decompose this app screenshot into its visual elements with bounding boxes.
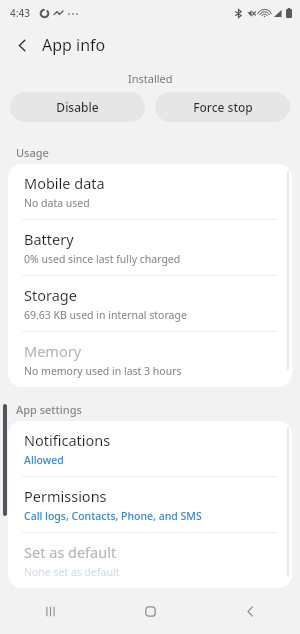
staticText: App settings: [16, 402, 82, 417]
staticText: Battery: [24, 229, 74, 249]
staticText: Call logs, Contacts, Phone, and SMS: [24, 509, 202, 523]
button[interactable]: Recents: [0, 588, 100, 634]
button[interactable]: Mobile data: [8, 164, 292, 219]
staticText: Mobile data: [24, 173, 105, 193]
staticText: No memory used in last 3 hours: [24, 364, 182, 378]
staticText: Notifications: [24, 430, 111, 450]
button[interactable]: Set as default: [8, 533, 292, 588]
button[interactable]: Battery: [8, 220, 292, 275]
button[interactable]: Permissions: [8, 477, 292, 532]
staticText: Installed: [128, 71, 173, 86]
staticText: Permissions: [24, 486, 107, 506]
button[interactable]: Home: [100, 588, 200, 634]
button[interactable]: Force stop: [155, 92, 290, 122]
staticText: Allowed: [24, 453, 64, 467]
staticText: Storage: [24, 285, 77, 305]
staticText: App info: [42, 34, 106, 56]
staticText: 69.63 KB used in internal storage: [24, 308, 187, 322]
staticText: No data used: [24, 196, 90, 210]
staticText: Set as default: [24, 542, 117, 562]
staticText: Memory: [24, 341, 82, 361]
button[interactable]: Notifications: [8, 421, 292, 476]
button[interactable]: Memory: [8, 332, 292, 387]
staticText: 4:43: [10, 6, 30, 20]
button[interactable]: Back: [200, 588, 300, 634]
staticText: Force stop: [193, 99, 253, 115]
staticText: None set as default: [24, 565, 120, 579]
button[interactable]: Disable: [10, 92, 145, 122]
staticText: 0% used since last fully charged: [24, 252, 181, 266]
button[interactable]: Back: [6, 29, 38, 61]
button[interactable]: Storage: [8, 276, 292, 331]
staticText: Disable: [56, 99, 99, 115]
staticText: Usage: [16, 145, 49, 160]
